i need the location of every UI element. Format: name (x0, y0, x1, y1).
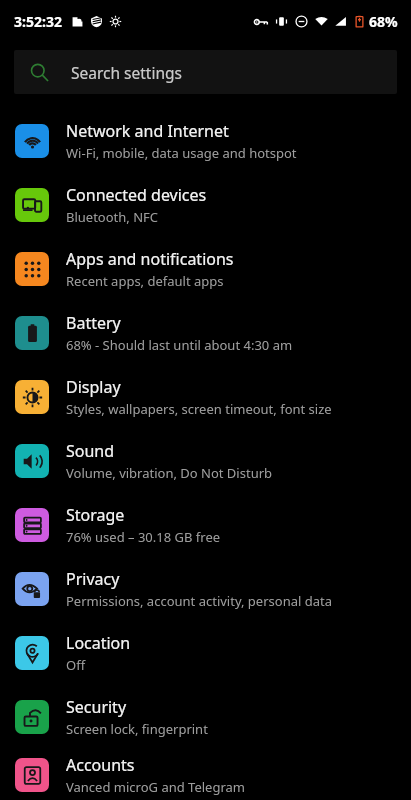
staticText: 68% - Should last until about 4:30 am (66, 336, 293, 354)
button[interactable]: Apps and notifications (0, 237, 411, 301)
button[interactable]: Connected devices (0, 173, 411, 237)
staticText: Recent apps, default apps (66, 272, 224, 290)
staticText: Vanced microG and Telegram (66, 778, 245, 796)
button[interactable]: Network and Internet (0, 109, 411, 173)
button[interactable]: Display (0, 365, 411, 429)
staticText: Off (66, 656, 86, 674)
staticText: Accounts (66, 754, 135, 776)
staticText: Screen lock, fingerprint (66, 720, 208, 738)
staticText: Location (66, 632, 131, 654)
staticText: Sound (66, 440, 115, 462)
staticText: Bluetooth, NFC (66, 208, 159, 226)
staticText: Privacy (66, 568, 120, 590)
staticText: Search settings (71, 62, 182, 83)
button[interactable]: Location (0, 621, 411, 685)
staticText: Permissions, account activity, personal … (66, 592, 332, 610)
staticText: Wi-Fi, mobile, data usage and hotspot (66, 144, 297, 162)
button[interactable]: Security (0, 685, 411, 749)
button[interactable]: Accounts (0, 749, 411, 800)
button[interactable]: Privacy (0, 557, 411, 621)
button[interactable]: Battery (0, 301, 411, 365)
staticText: Security (66, 696, 127, 718)
button[interactable]: Sound (0, 429, 411, 493)
staticText: Apps and notifications (66, 248, 234, 270)
staticText: 76% used – 30.18 GB free (66, 528, 221, 546)
staticText: 3:52:32 (14, 12, 62, 31)
staticText: 68% (369, 12, 398, 31)
staticText: Connected devices (66, 184, 207, 206)
staticText: Display (66, 376, 121, 398)
staticText: Storage (66, 504, 125, 526)
button[interactable]: Storage (0, 493, 411, 557)
staticText: Volume, vibration, Do Not Disturb (66, 464, 273, 482)
staticText: Battery (66, 312, 121, 334)
staticText: Styles, wallpapers, screen timeout, font… (66, 400, 332, 418)
staticText: Network and Internet (66, 120, 229, 142)
button[interactable]: Search settings (14, 50, 397, 94)
